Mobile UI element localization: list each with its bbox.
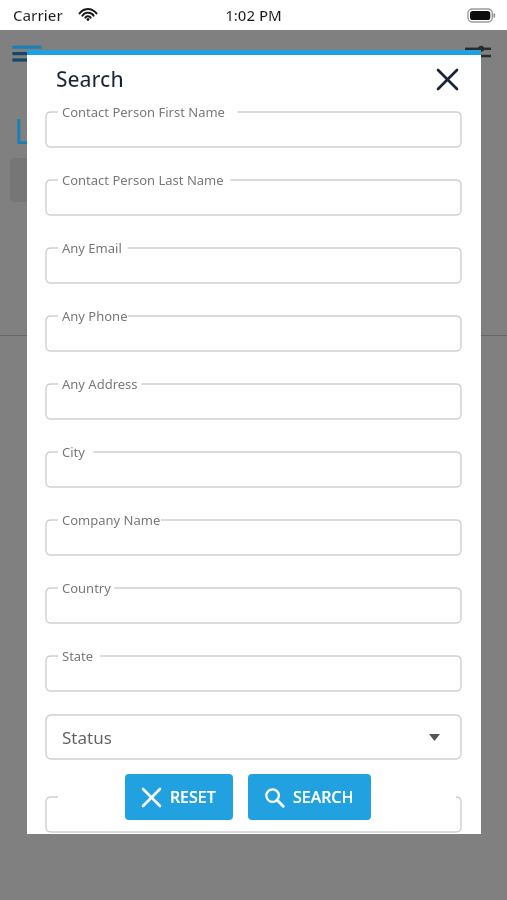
button[interactable]: RESET	[125, 774, 233, 820]
staticText: City	[62, 443, 85, 461]
button[interactable]: Status	[46, 715, 461, 773]
button[interactable]	[46, 788, 461, 834]
staticText: RESET	[170, 786, 216, 808]
staticText: Any Phone	[62, 307, 128, 325]
button[interactable]: Any Email	[46, 239, 461, 307]
staticText: Contact Person First Name	[62, 103, 225, 121]
staticText: Any Address	[62, 375, 138, 393]
staticText: Country	[62, 579, 111, 597]
staticText: Company Name	[62, 511, 161, 529]
button[interactable]: Close	[429, 61, 465, 97]
staticText: Search	[56, 65, 124, 94]
button[interactable]: Contact Person Last Name	[46, 171, 461, 239]
staticText: Carrier	[13, 5, 63, 25]
button[interactable]: SEARCH	[248, 774, 371, 820]
button[interactable]: State	[46, 647, 461, 715]
button[interactable]: Any Phone	[46, 307, 461, 375]
button[interactable]: Any Address	[46, 375, 461, 443]
staticText: SEARCH	[293, 786, 354, 808]
button[interactable]: Country	[46, 579, 461, 647]
button[interactable]: Company Name	[46, 511, 461, 579]
staticText: Status	[62, 726, 112, 749]
staticText: Any Email	[62, 239, 122, 257]
staticText: L	[14, 108, 32, 154]
button[interactable]: Contact Person First Name	[46, 103, 461, 171]
staticText: 1:02 PM	[225, 5, 282, 25]
staticText: Contact Person Last Name	[62, 171, 224, 189]
button[interactable]: City	[46, 443, 461, 511]
staticText: State	[62, 647, 94, 665]
